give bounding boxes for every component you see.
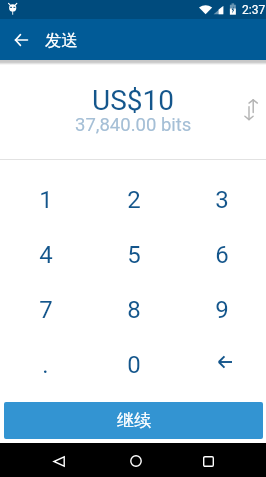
staticText: .	[42, 351, 49, 379]
button[interactable]: 5	[90, 227, 178, 282]
button[interactable]: Back	[6, 25, 36, 55]
staticText: 7	[39, 296, 53, 324]
button[interactable]: .	[1, 337, 90, 392]
staticText: 8	[127, 296, 141, 324]
button[interactable]: Back	[38, 444, 79, 477]
button[interactable]: 8	[90, 282, 178, 337]
staticText: 1	[39, 186, 53, 214]
staticText: 5	[127, 241, 141, 269]
staticText: 6	[215, 241, 229, 269]
button[interactable]: Home	[115, 444, 156, 477]
button[interactable]: 4	[1, 227, 90, 282]
staticText: US$10	[92, 84, 174, 117]
button[interactable]: 0	[90, 337, 178, 392]
button[interactable]: 7	[1, 282, 90, 337]
staticText: 0	[127, 351, 141, 379]
staticText: 9	[215, 296, 229, 324]
button[interactable]: 继续	[4, 402, 263, 439]
staticText: 4	[39, 241, 53, 269]
staticText: 2:37	[242, 3, 266, 17]
staticText: 37,840.00 bits	[75, 114, 192, 136]
button[interactable]: Recents	[188, 444, 229, 477]
button[interactable]: Swap currency	[240, 89, 266, 123]
button[interactable]: Backspace	[178, 337, 266, 392]
staticText: 3	[215, 186, 229, 214]
staticText: 2	[127, 186, 141, 214]
button[interactable]: 3	[178, 172, 266, 227]
button[interactable]: 2	[90, 172, 178, 227]
button[interactable]: 1	[1, 172, 90, 227]
staticText: 发送	[45, 30, 78, 51]
staticText: 继续	[117, 410, 151, 431]
button[interactable]: 9	[178, 282, 266, 337]
button[interactable]: 6	[178, 227, 266, 282]
